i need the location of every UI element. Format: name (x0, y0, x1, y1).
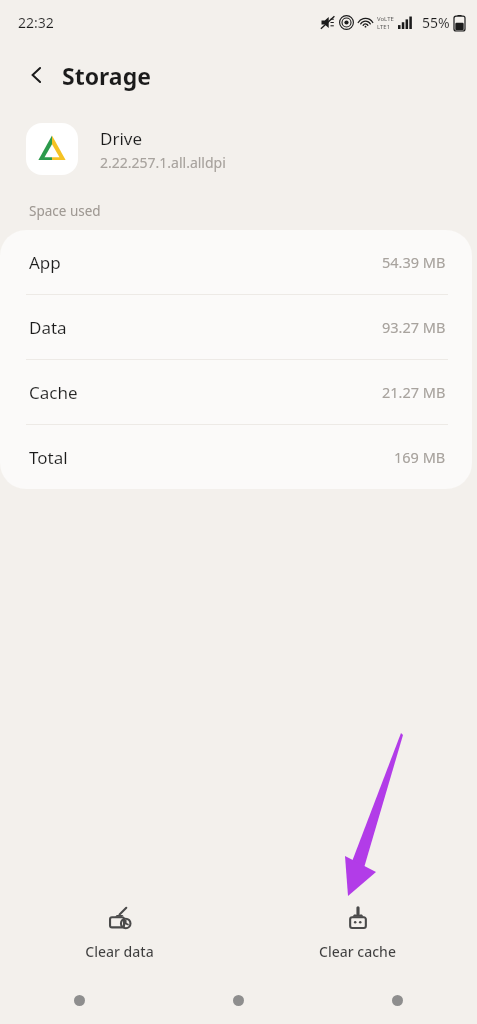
staticText: 2.22.257.1.all.alldpi (100, 153, 226, 172)
button[interactable]: Clear cache (238, 890, 477, 976)
staticText: VoLTE (377, 15, 394, 23)
button[interactable]: Clear data (0, 890, 238, 976)
staticText: 93.27 MB (382, 317, 446, 337)
staticText: Total (29, 446, 68, 469)
staticText: 54.39 MB (382, 252, 446, 272)
button[interactable]: Data (0, 295, 472, 360)
staticText: 22:32 (18, 13, 54, 32)
button[interactable]: Back (14, 52, 60, 98)
staticText: 21.27 MB (382, 382, 446, 402)
staticText: 169 MB (394, 447, 446, 467)
button[interactable]: App (0, 230, 472, 295)
staticText: Data (29, 316, 67, 339)
staticText: Clear cache (319, 942, 396, 961)
button[interactable]: Back (318, 976, 477, 1024)
staticText: Storage (62, 60, 151, 91)
staticText: LTE1 (377, 23, 391, 30)
staticText: App (29, 251, 61, 274)
button[interactable]: Recents (0, 976, 159, 1024)
staticText: 55% (422, 13, 450, 32)
button[interactable]: Total (0, 425, 472, 489)
button[interactable]: Cache (0, 360, 472, 425)
staticText: Clear data (85, 942, 154, 961)
staticText: Cache (29, 381, 78, 404)
button[interactable]: Home (159, 976, 318, 1024)
staticText: Drive (100, 127, 143, 150)
staticText: Space used (29, 202, 101, 220)
